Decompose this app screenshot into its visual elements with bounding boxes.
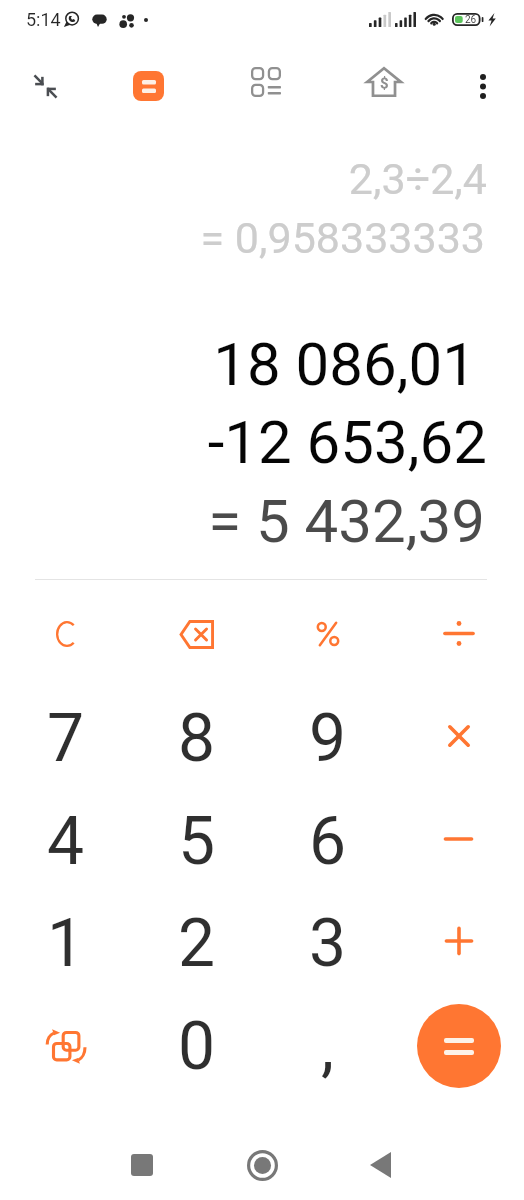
staticText: 2 [178,905,216,982]
button[interactable]: 2 [131,895,262,991]
staticText: 1 [47,905,85,982]
staticText: $ [380,74,389,92]
button[interactable]: Percent [262,586,393,682]
staticText: 2,3÷2,4 [348,154,487,204]
button[interactable]: Converters [242,58,290,106]
button[interactable]: Calculator [124,62,172,110]
button[interactable]: 8 [131,690,262,786]
button[interactable]: Collapse [21,62,69,110]
staticText: = 5 432,39 [208,486,485,556]
button[interactable]: 5 [131,793,262,889]
button[interactable]: 3 [262,895,393,991]
button[interactable]: Swap [0,998,131,1094]
button[interactable]: Home [238,1141,286,1189]
staticText: 7 [47,700,85,777]
staticText: 8 [178,700,216,777]
button[interactable]: Plus [393,895,524,991]
button[interactable]: Backspace [131,586,262,682]
button[interactable]: Loan calculator [360,58,408,106]
button[interactable]: Clear [0,586,131,682]
button[interactable]: 4 [0,793,131,889]
staticText: 4 [47,803,85,880]
button[interactable]: Equals [417,1004,501,1088]
staticText: -12 653,62 [207,407,487,477]
staticText: 0 [178,1008,216,1085]
staticText: 3 [309,905,347,982]
staticText: 18 086,01 [213,329,476,399]
staticText: 6 [309,803,347,880]
button[interactable]: Multiply [393,690,524,786]
button[interactable]: 7 [0,690,131,786]
button[interactable]: , [262,998,393,1094]
button[interactable]: 1 [0,895,131,991]
staticText: 9 [309,700,347,777]
staticText: , [321,1008,334,1085]
button[interactable]: Back [356,1141,404,1189]
button[interactable]: 6 [262,793,393,889]
button[interactable]: Minus [393,793,524,889]
staticText: 5:14 [26,9,61,30]
button[interactable]: Divide [393,586,524,682]
staticText: = 0,958333333 [200,213,485,263]
button[interactable]: 0 [131,998,262,1094]
button[interactable]: 9 [262,690,393,786]
button[interactable]: Recents [118,1141,166,1189]
staticText: 26 [465,14,477,26]
button[interactable]: More options [459,62,507,110]
staticText: 5 [178,803,216,880]
